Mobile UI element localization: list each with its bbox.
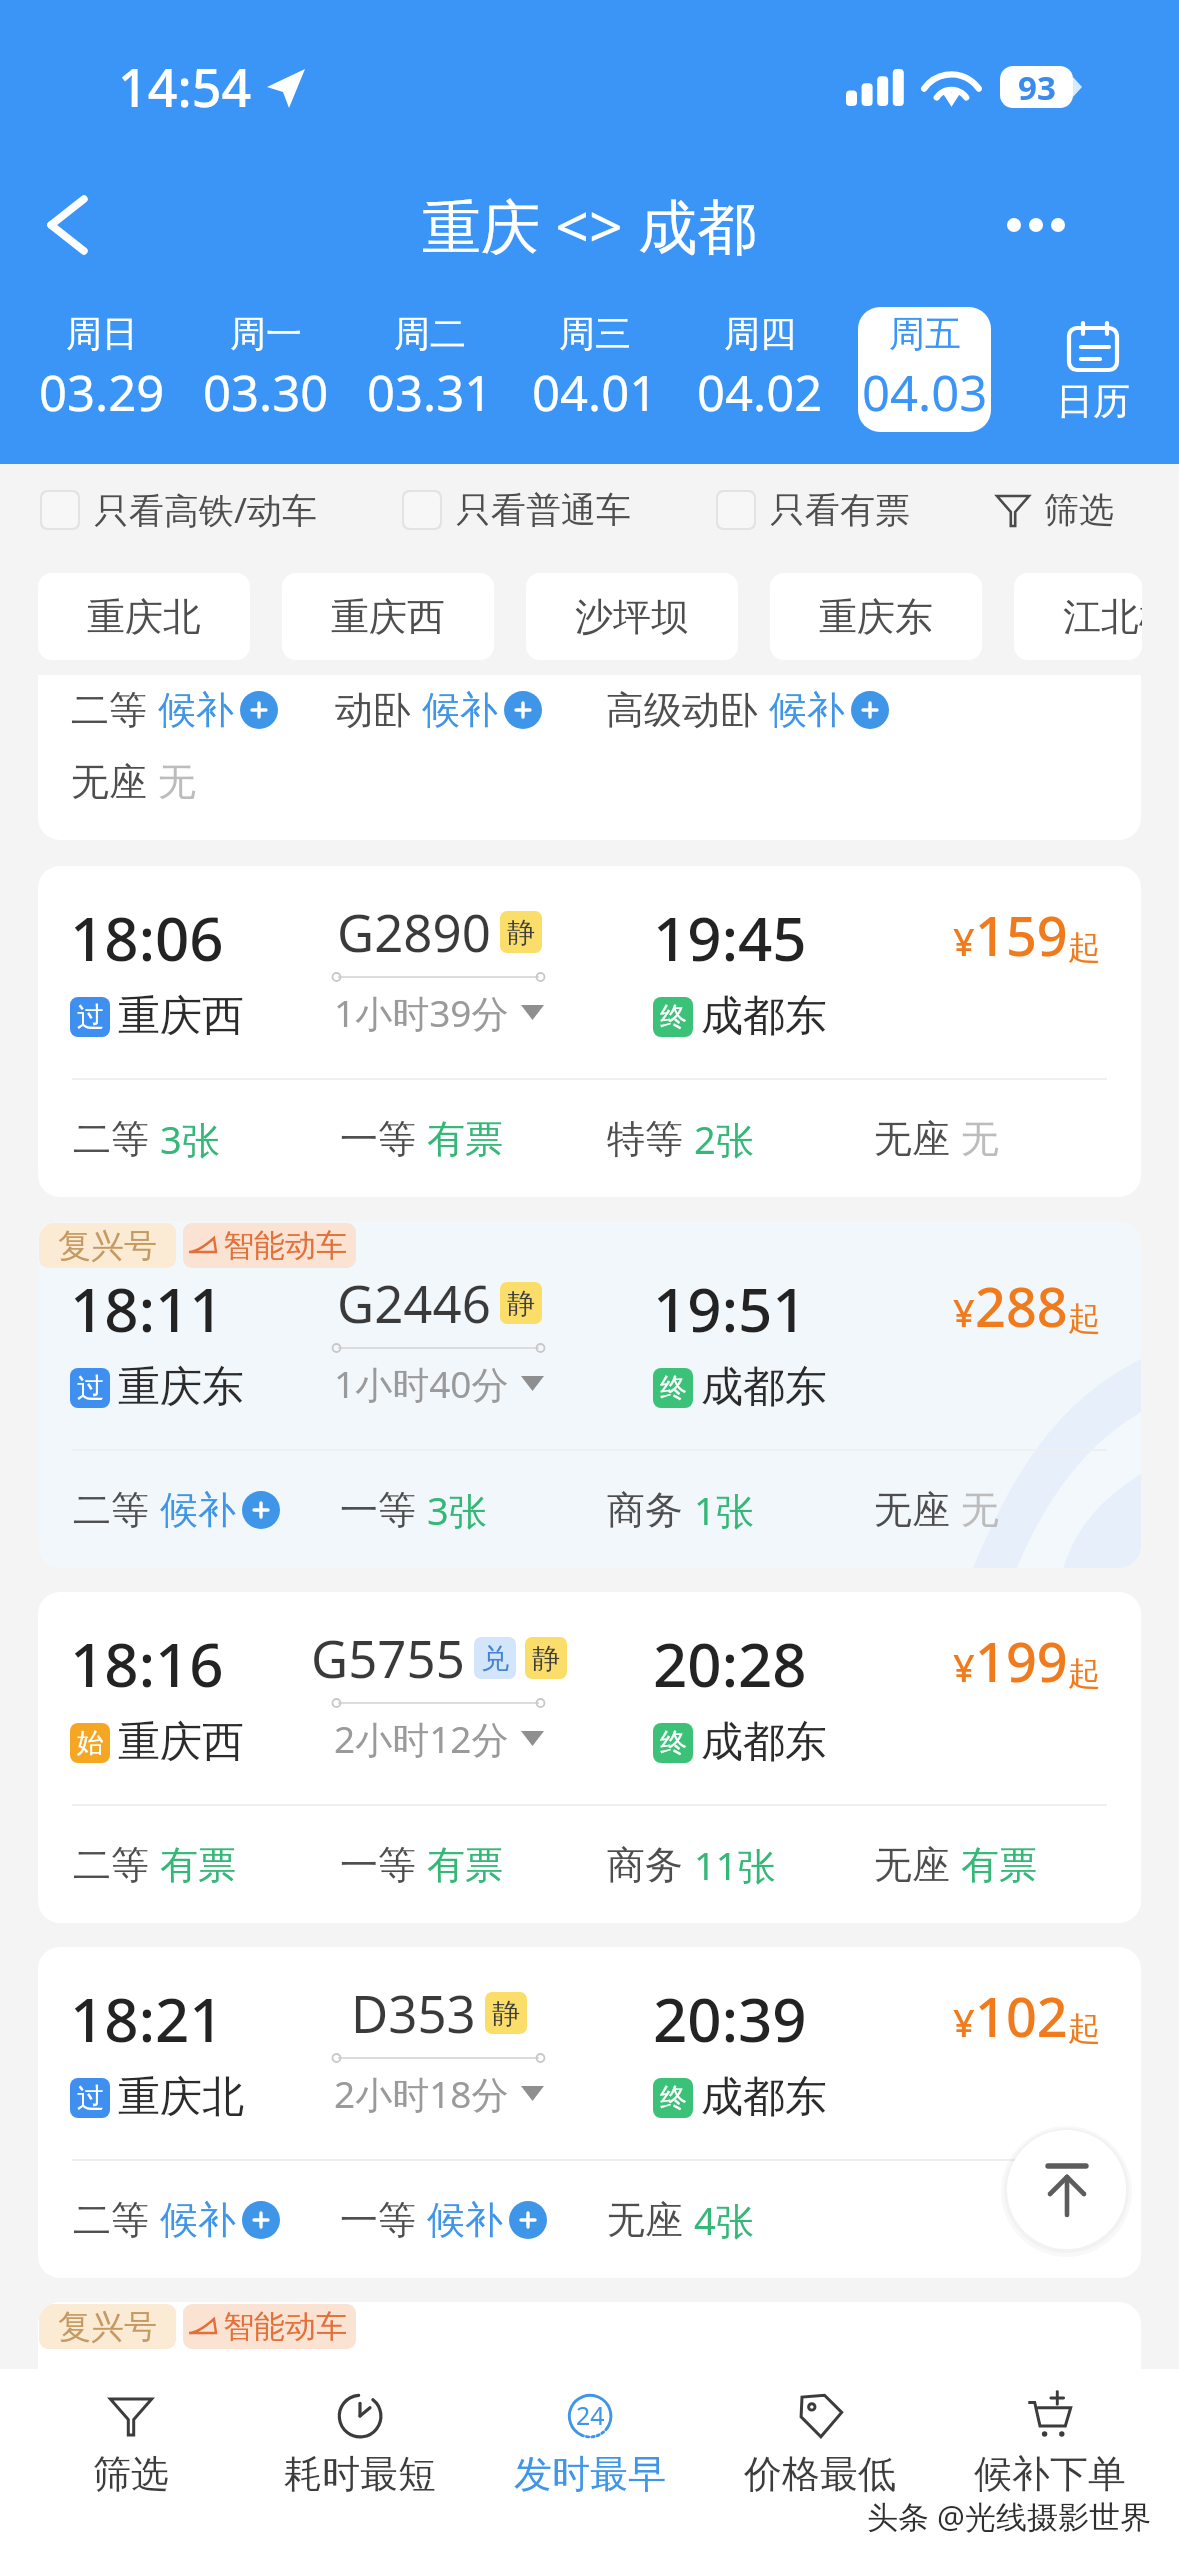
button[interactable]: 无座 — [874, 1115, 999, 1163]
button[interactable]: 筛选 — [16, 2369, 245, 2516]
button[interactable]: 复兴号 — [38, 1221, 1141, 1568]
button[interactable]: 18:06 — [38, 866, 1141, 1197]
staticText: 静 — [507, 915, 535, 950]
staticText: 有票 — [160, 1841, 236, 1889]
button[interactable]: 无座 — [71, 758, 196, 806]
staticText: G5755 — [311, 1623, 465, 1692]
staticText: 候补 — [160, 1486, 236, 1534]
staticText: 无 — [961, 1115, 999, 1163]
button[interactable]: 二等 — [38, 675, 1141, 840]
button[interactable]: 只看高铁/动车 — [40, 486, 318, 534]
button[interactable]: 周二 — [364, 307, 496, 432]
button[interactable]: 周一 — [200, 307, 332, 432]
button[interactable]: 周五 — [858, 307, 991, 432]
staticText: 无座 — [607, 2196, 683, 2244]
button[interactable]: 候补下单 — [935, 2369, 1165, 2516]
button[interactable]: 无座 — [607, 2194, 754, 2246]
staticText: 无座 — [874, 1486, 950, 1534]
staticText: 一等 — [340, 1841, 416, 1889]
staticText: 筛选 — [1044, 488, 1114, 532]
button[interactable]: 日历 — [1007, 300, 1179, 464]
button[interactable]: 一等 — [340, 2196, 547, 2244]
button[interactable]: 筛选 — [995, 488, 1114, 532]
staticText: 二等 — [73, 1486, 149, 1534]
button[interactable]: 重庆北 — [38, 573, 250, 660]
staticText: 有票 — [961, 1841, 1037, 1889]
button[interactable]: 动卧 — [335, 686, 542, 734]
button[interactable]: 周四 — [693, 307, 826, 432]
staticText: 04.02 — [697, 359, 823, 426]
staticText: 93 — [1018, 66, 1056, 107]
staticText: 18:11 — [70, 1268, 224, 1350]
staticText: 静 — [507, 1286, 535, 1321]
button[interactable]: 18:16 — [38, 1592, 1141, 1923]
staticText: 04.01 — [532, 359, 658, 426]
button[interactable]: 高级动卧 — [606, 686, 889, 734]
staticText: 3张 — [427, 1484, 487, 1536]
staticText: 复兴号 — [58, 2306, 157, 2348]
button[interactable]: 周日 — [36, 307, 168, 432]
button[interactable]: 一等 — [340, 1484, 487, 1536]
staticText: 11张 — [694, 1839, 776, 1891]
button[interactable]: 一等 — [340, 1115, 503, 1163]
button[interactable]: 价格最低 — [705, 2369, 935, 2516]
staticText: 3张 — [160, 1113, 220, 1165]
button[interactable]: 一等 — [340, 1841, 503, 1889]
button[interactable]: 江北机场 — [1014, 573, 1142, 660]
staticText: 只看普通车 — [456, 488, 631, 532]
staticText: 102 — [975, 1979, 1068, 2053]
staticText: ¥ — [953, 1996, 975, 2048]
button[interactable]: 复兴号 — [38, 2302, 1141, 2382]
button[interactable]: Back to top — [1007, 2130, 1126, 2249]
button[interactable]: 24 — [475, 2369, 705, 2516]
button[interactable]: 周三 — [528, 307, 661, 432]
staticText: 18:06 — [70, 897, 224, 979]
button[interactable]: 二等 — [71, 686, 278, 734]
staticText: 起 — [1068, 1653, 1101, 1695]
staticText: ¥ — [953, 1641, 975, 1693]
button[interactable]: 二等 — [73, 1113, 220, 1165]
button[interactable]: 二等 — [73, 2196, 280, 2244]
staticText: ¥ — [953, 915, 975, 967]
staticText: G2890 — [337, 897, 491, 966]
staticText: 候补 — [427, 2196, 503, 2244]
button[interactable]: 二等 — [73, 1841, 236, 1889]
button[interactable]: 无座 — [874, 1841, 1037, 1889]
button[interactable]: 只看普通车 — [402, 488, 631, 532]
staticText: ¥ — [953, 1286, 975, 1338]
button[interactable]: 重庆西 — [282, 573, 494, 660]
staticText: 2小时12分 — [334, 1713, 509, 1764]
button[interactable]: 商务 — [607, 1484, 754, 1536]
staticText: 03.31 — [367, 359, 493, 426]
button[interactable]: 重庆东 — [770, 573, 982, 660]
staticText: 无 — [158, 758, 196, 806]
staticText: 重庆东 — [796, 593, 956, 641]
button[interactable]: 耗时最短 — [245, 2369, 475, 2516]
staticText: 终 — [660, 1726, 687, 1760]
staticText: 2小时18分 — [334, 2068, 509, 2119]
staticText: 重庆北 — [118, 2071, 244, 2124]
button[interactable]: 商务 — [607, 1839, 776, 1891]
staticText: 起 — [1068, 927, 1101, 969]
button[interactable]: 沙坪坝 — [526, 573, 738, 660]
button[interactable]: 18:21 — [38, 1947, 1141, 2278]
staticText: 无座 — [874, 1115, 950, 1163]
staticText: 发时最早 — [514, 2450, 666, 2498]
button[interactable]: More options — [981, 170, 1091, 280]
staticText: G2446 — [337, 1268, 491, 1337]
staticText: 一等 — [340, 2196, 416, 2244]
staticText: 过 — [77, 2081, 104, 2115]
staticText: 特等 — [607, 1115, 683, 1163]
button[interactable]: 无座 — [874, 1486, 999, 1534]
staticText: 候补 — [769, 686, 845, 734]
staticText: 智能动车 — [223, 1226, 347, 1265]
staticText: 有票 — [427, 1841, 503, 1889]
staticText: D353 — [351, 1978, 476, 2047]
button[interactable]: 只看有票 — [716, 488, 910, 532]
button[interactable]: 特等 — [607, 1113, 754, 1165]
staticText: 19:45 — [653, 897, 807, 979]
button[interactable]: Back — [16, 170, 126, 280]
staticText: 周日 — [66, 311, 138, 356]
staticText: 20:28 — [653, 1623, 807, 1705]
button[interactable]: 二等 — [73, 1486, 280, 1534]
